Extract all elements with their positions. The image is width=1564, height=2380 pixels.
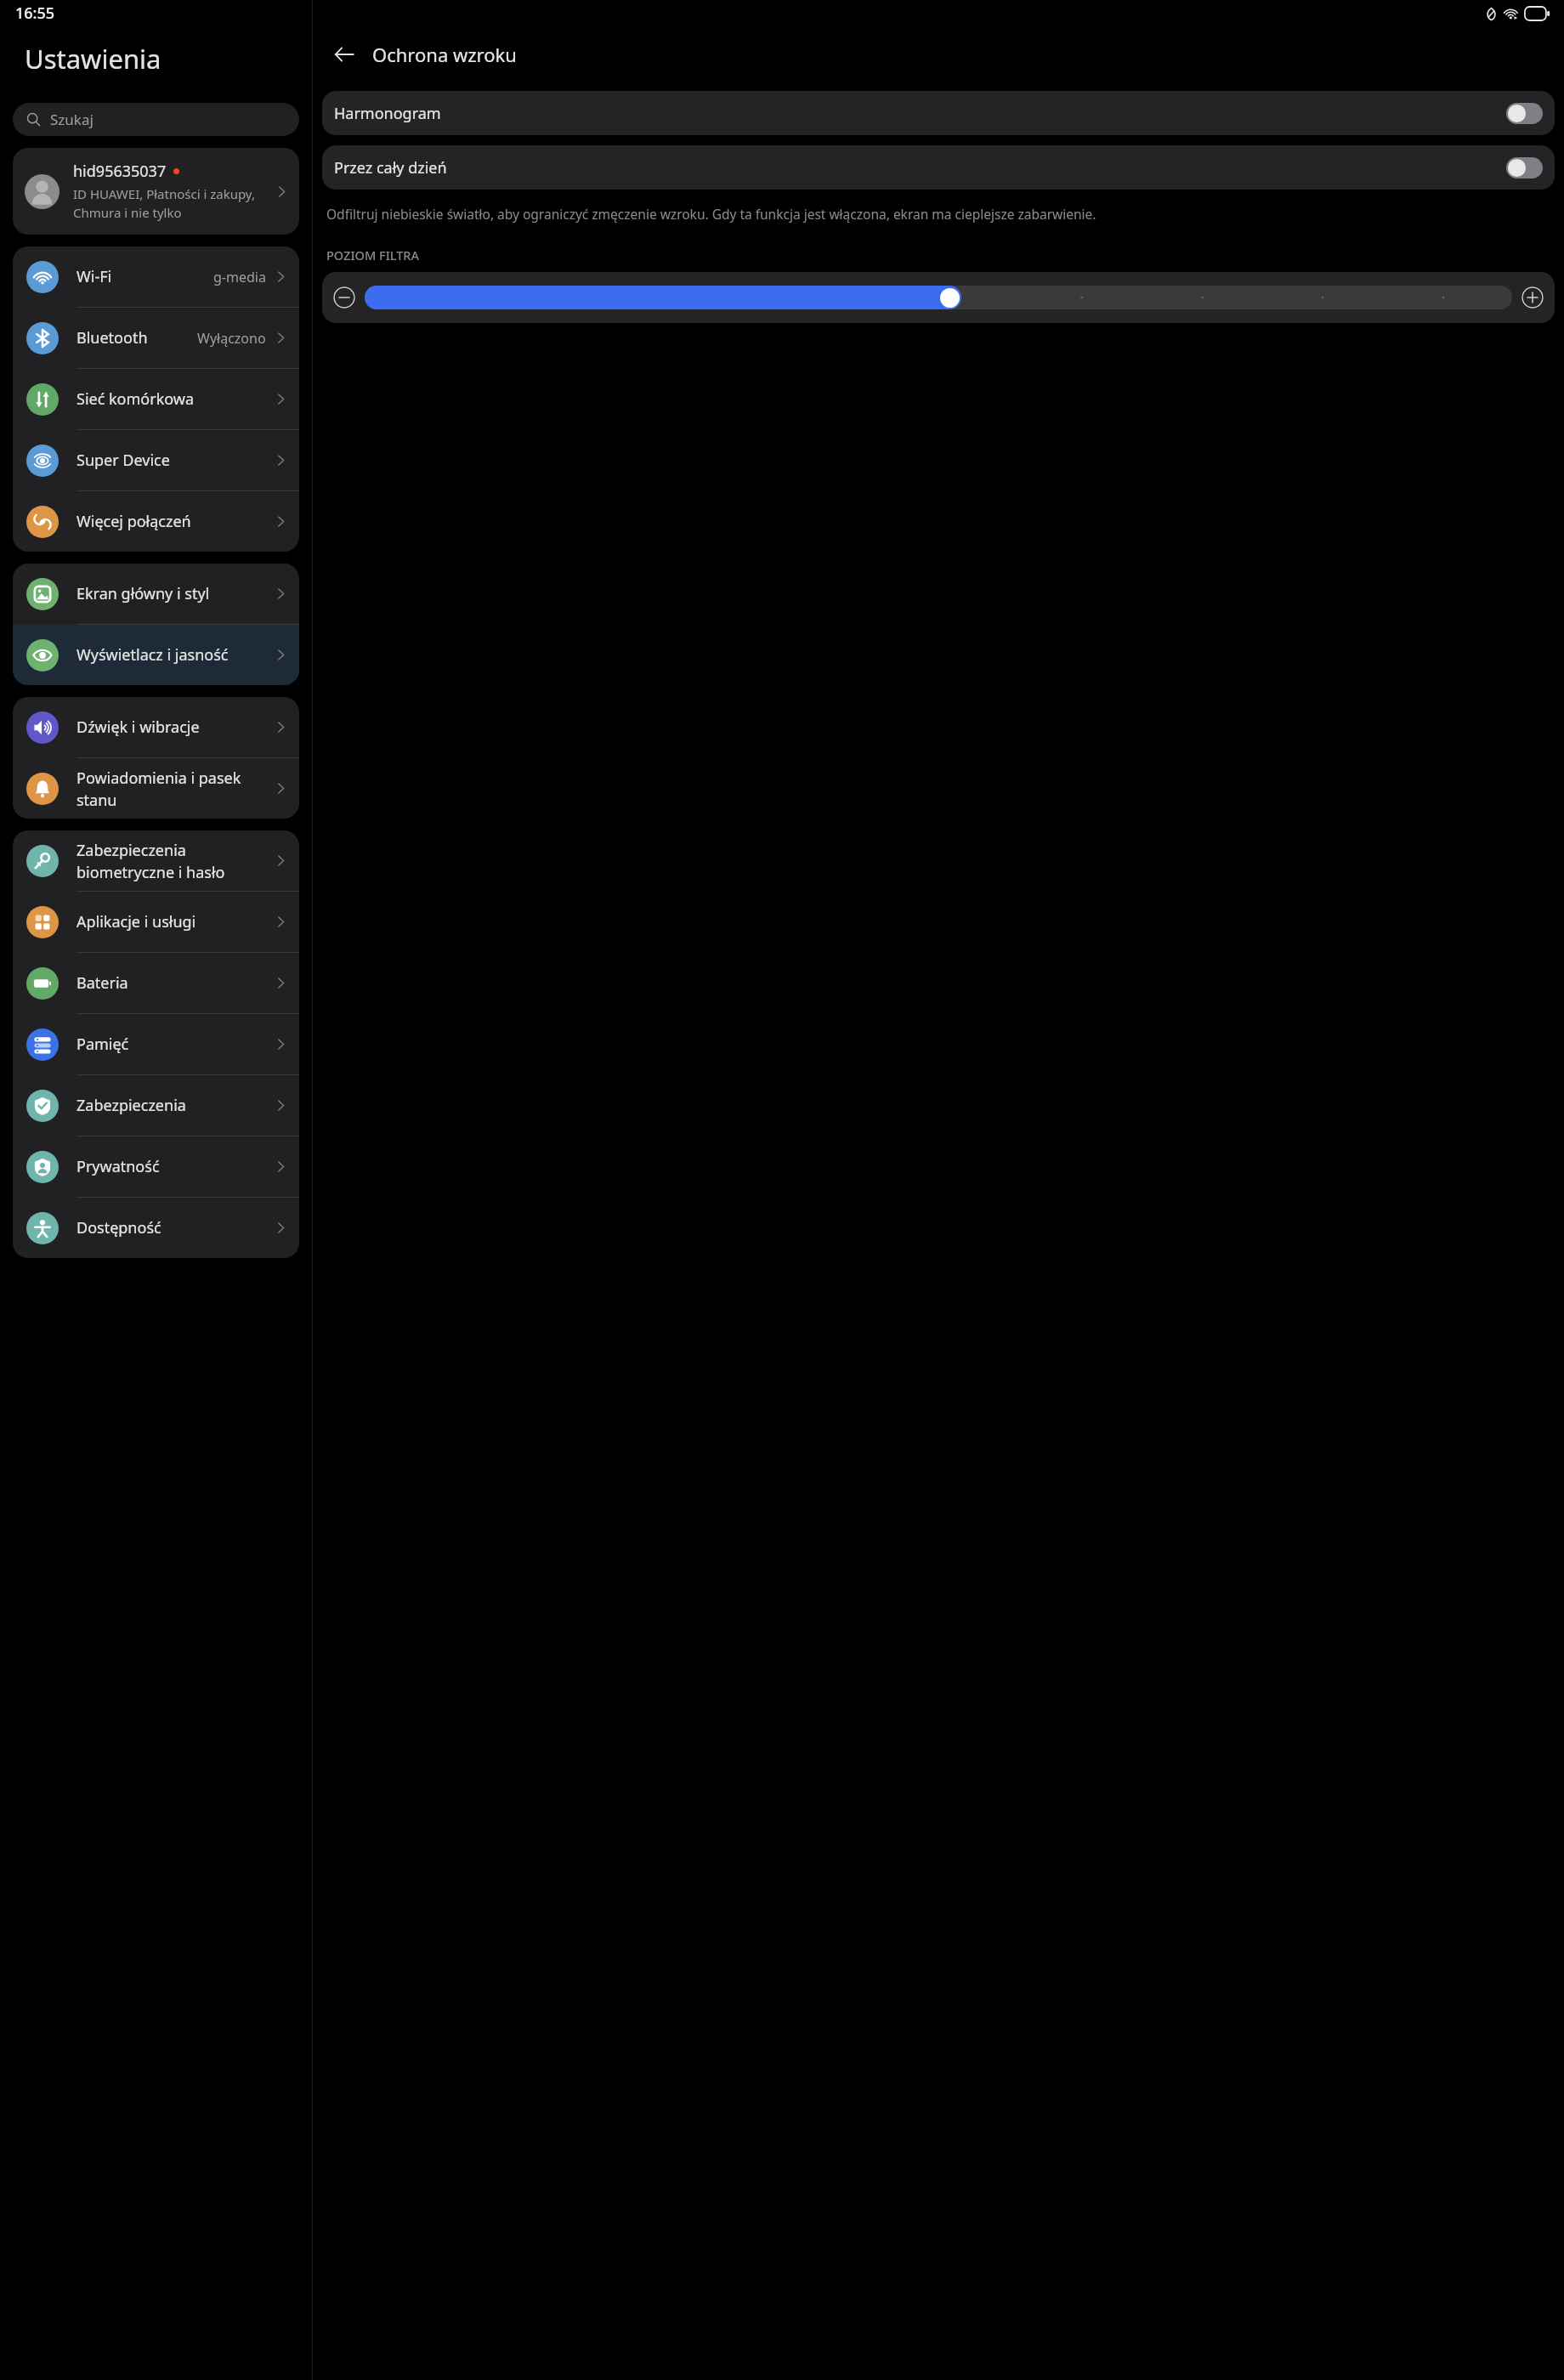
button[interactable]: Prywatność <box>13 1136 299 1197</box>
staticText: 16:55 <box>15 3 55 24</box>
button[interactable]: Więcej połączeń <box>13 491 299 552</box>
button[interactable]: Powiadomienia i pasek stanu <box>13 758 299 819</box>
button[interactable]: Ekran główny i styl <box>13 564 299 624</box>
staticText: Wi-Fi <box>76 266 213 287</box>
button[interactable]: Bluetooth <box>13 308 299 368</box>
staticText: Szukaj <box>50 110 93 129</box>
staticText: Bluetooth <box>76 327 197 348</box>
button[interactable]: Sieć komórkowa <box>13 369 299 429</box>
button[interactable]: Super Device <box>13 430 299 490</box>
button[interactable]: Przez cały dzień <box>322 145 1555 190</box>
staticText: Odfiltruj niebieskie światło, aby ograni… <box>326 205 1096 223</box>
staticText: Dźwięk i wibracje <box>76 717 274 738</box>
staticText: Pamięć <box>76 1034 274 1055</box>
staticText: Harmonogram <box>334 103 1506 124</box>
button[interactable]: Wstecz <box>326 36 363 73</box>
button[interactable]: Dostępność <box>13 1198 299 1258</box>
staticText: Przez cały dzień <box>334 157 1506 178</box>
staticText: Ochrona wzroku <box>372 42 517 67</box>
staticText: Powiadomienia i pasek stanu <box>76 768 274 810</box>
button[interactable]: Szukaj <box>13 103 299 136</box>
button[interactable]: Pamięć <box>13 1014 299 1074</box>
staticText: Sieć komórkowa <box>76 388 274 410</box>
button[interactable]: Zabezpieczenia biometryczne i hasło <box>13 830 299 891</box>
staticText: Bateria <box>76 972 274 994</box>
button[interactable]: Zwiększ <box>1521 286 1544 309</box>
staticText: Ekran główny i styl <box>76 583 274 604</box>
staticText: Zabezpieczenia <box>76 1095 274 1116</box>
button[interactable]: Harmonogram <box>322 91 1555 135</box>
button[interactable]: hid95635037 <box>13 148 299 235</box>
button[interactable]: Zmniejsz <box>333 286 355 309</box>
staticText: g-media <box>213 268 266 286</box>
staticText: Więcej połączeń <box>76 511 274 532</box>
staticText: Ustawienia <box>25 41 161 76</box>
staticText: POZIOM FILTRA <box>326 246 420 263</box>
button[interactable]: Wyświetlacz i jasność <box>13 625 299 685</box>
staticText: Zabezpieczenia biometryczne i hasło <box>76 840 274 882</box>
staticText: Aplikacje i usługi <box>76 911 274 932</box>
staticText: Prywatność <box>76 1156 274 1177</box>
staticText: ID HUAWEI, Płatności i zakupy, Chmura i … <box>73 185 255 222</box>
button[interactable]: Bateria <box>13 953 299 1013</box>
staticText: Wyświetlacz i jasność <box>76 644 274 666</box>
button[interactable]: Dźwięk i wibracje <box>13 697 299 757</box>
button[interactable]: Aplikacje i usługi <box>13 892 299 952</box>
staticText: Super Device <box>76 450 274 471</box>
button[interactable]: Zabezpieczenia <box>13 1075 299 1136</box>
staticText: Dostępność <box>76 1217 274 1238</box>
button[interactable]: Wi-Fi <box>13 246 299 307</box>
staticText: Wyłączono <box>197 329 266 348</box>
staticText: hid95635037 <box>73 161 167 182</box>
button[interactable]: Poziom filtra <box>365 286 1512 309</box>
